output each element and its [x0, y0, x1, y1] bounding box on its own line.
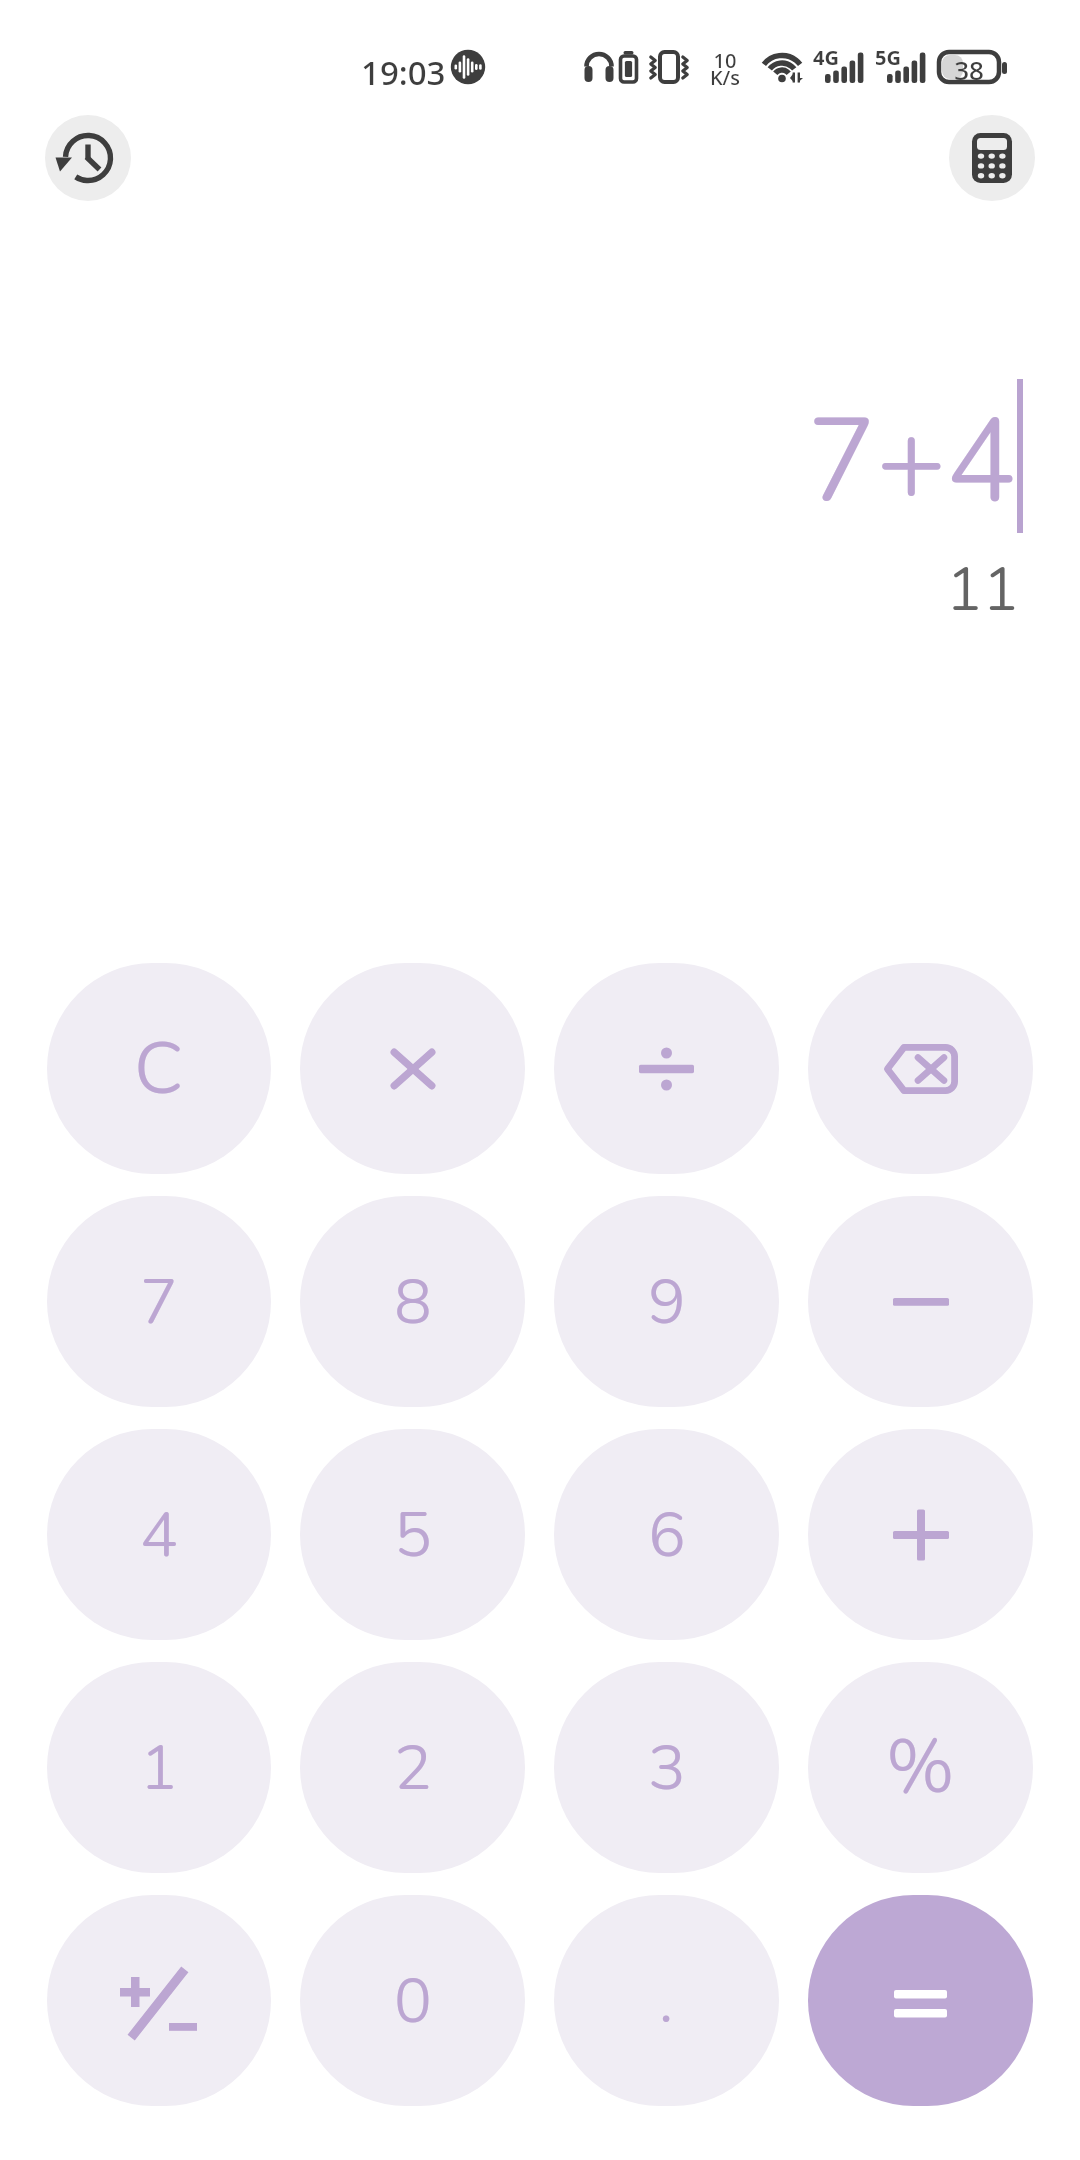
- button[interactable]: 4: [47, 1429, 271, 1640]
- button[interactable]: %: [808, 1662, 1033, 1873]
- button[interactable]: Calculator: [949, 115, 1035, 201]
- button[interactable]: 2: [300, 1662, 525, 1873]
- staticText: 7: [140, 1259, 178, 1345]
- button[interactable]: Multiply: [300, 963, 525, 1174]
- button[interactable]: Minus: [808, 1196, 1033, 1407]
- button[interactable]: 9: [554, 1196, 779, 1407]
- staticText: 11: [946, 548, 1020, 631]
- button[interactable]: 6: [554, 1429, 779, 1640]
- staticText: 7+4: [807, 383, 1016, 541]
- staticText: 19:03: [361, 50, 446, 95]
- staticText: 1: [140, 1725, 178, 1811]
- button[interactable]: Delete: [808, 963, 1033, 1174]
- staticText: %: [886, 1717, 955, 1818]
- staticText: 6: [648, 1492, 686, 1578]
- staticText: .: [659, 1958, 674, 2044]
- staticText: 4: [140, 1492, 178, 1578]
- button[interactable]: History: [45, 115, 131, 201]
- button[interactable]: Plus: [808, 1429, 1033, 1640]
- staticText: 5G: [875, 44, 901, 71]
- button[interactable]: 8: [300, 1196, 525, 1407]
- staticText: 0: [394, 1958, 432, 2044]
- button[interactable]: 5: [300, 1429, 525, 1640]
- button[interactable]: .: [554, 1895, 779, 2106]
- staticText: 5: [394, 1492, 432, 1578]
- button[interactable]: Plus minus: [47, 1895, 271, 2106]
- button[interactable]: Divide: [554, 963, 779, 1174]
- staticText: 8: [394, 1259, 432, 1345]
- button[interactable]: 1: [47, 1662, 271, 1873]
- staticText: 2: [394, 1725, 432, 1811]
- button[interactable]: C: [47, 963, 271, 1174]
- staticText: 4G: [813, 44, 839, 71]
- staticText: 3: [648, 1725, 686, 1811]
- button[interactable]: Equals: [808, 1895, 1033, 2106]
- button[interactable]: 0: [300, 1895, 525, 2106]
- staticText: C: [134, 1019, 184, 1119]
- staticText: 38: [946, 52, 992, 87]
- staticText: 9: [648, 1259, 686, 1345]
- staticText: K/s: [708, 64, 742, 91]
- button[interactable]: 3: [554, 1662, 779, 1873]
- button[interactable]: 7: [47, 1196, 271, 1407]
- staticText: 10: [708, 47, 742, 74]
